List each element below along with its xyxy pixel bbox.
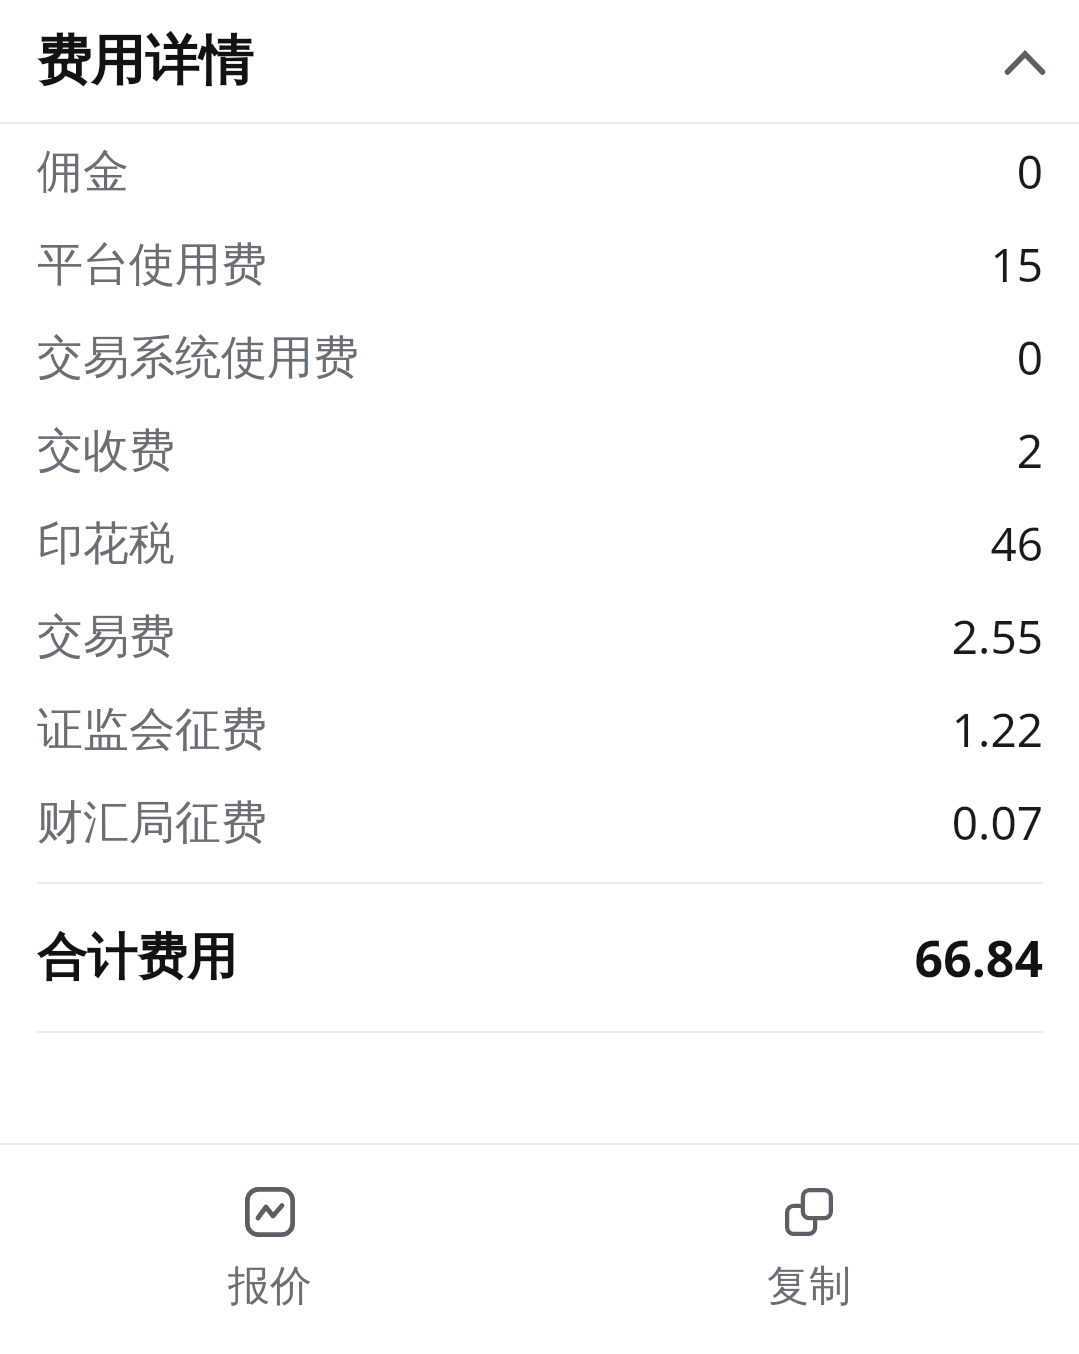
button[interactable]: 交收费 [0, 404, 1079, 497]
button[interactable]: 交易费 [0, 590, 1079, 683]
button[interactable]: 报价 [0, 1178, 539, 1321]
staticText: 证监会征费 [37, 701, 267, 759]
staticText: 交易费 [37, 608, 175, 666]
staticText: 0 [1016, 140, 1043, 203]
staticText: 佣金 [37, 143, 129, 201]
button[interactable]: 交易系统使用费 [0, 311, 1079, 404]
button[interactable]: 印花税 [0, 497, 1079, 590]
button[interactable]: 平台使用费 [0, 218, 1079, 311]
button[interactable]: 佣金 [0, 125, 1079, 218]
staticText: 0.07 [951, 791, 1043, 854]
button[interactable]: 证监会征费 [0, 683, 1079, 776]
staticText: 2.55 [951, 605, 1043, 668]
staticText: 交收费 [37, 422, 175, 480]
staticText: 复制 [767, 1260, 851, 1313]
staticText: 1.22 [951, 698, 1043, 761]
staticText: 财汇局征费 [37, 794, 267, 852]
staticText: 报价 [228, 1260, 312, 1313]
staticText: 印花税 [37, 515, 175, 573]
staticText: 66.84 [914, 924, 1043, 992]
button[interactable]: 复制 [539, 1178, 1079, 1321]
staticText: 15 [990, 233, 1043, 296]
button[interactable]: 费用详情 [0, 0, 1079, 122]
staticText: 交易系统使用费 [37, 329, 359, 387]
other: Collapse [997, 33, 1053, 89]
staticText: 合计费用 [37, 926, 237, 989]
staticText: 2 [1016, 419, 1043, 482]
staticText: 0 [1016, 326, 1043, 389]
staticText: 46 [990, 512, 1043, 575]
button[interactable]: 财汇局征费 [0, 776, 1079, 869]
staticText: 平台使用费 [37, 236, 267, 294]
staticText: 费用详情 [37, 27, 253, 95]
button[interactable]: 合计费用 [0, 884, 1079, 1031]
